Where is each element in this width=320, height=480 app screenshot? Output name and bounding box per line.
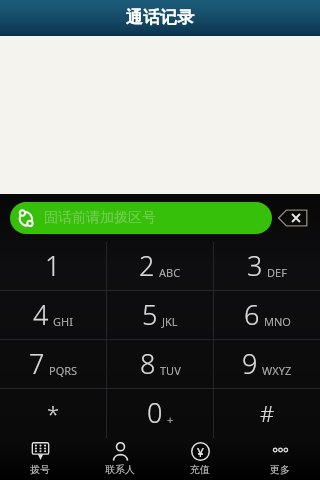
staticText: ¥ [197, 444, 204, 460]
button[interactable]: 8 [107, 340, 213, 389]
button[interactable]: 6 [214, 291, 320, 340]
staticText: 3 [247, 247, 263, 284]
staticText: 更多 [270, 463, 290, 476]
button[interactable]: 5 [107, 291, 213, 340]
button[interactable]: 2 [107, 242, 213, 291]
staticText: 拨号 [30, 463, 50, 476]
staticText: 联系人 [105, 463, 135, 476]
staticText: 7 [29, 345, 45, 382]
staticText: 5 [142, 296, 158, 333]
staticText: * [47, 398, 60, 428]
staticText: PQRS [49, 363, 78, 378]
button[interactable]: 联系人 [80, 438, 160, 480]
staticText: + [167, 412, 174, 427]
staticText: 固话前请加拨区号 [44, 209, 156, 227]
staticText: GHI [53, 314, 73, 329]
staticText: WXYZ [262, 363, 292, 378]
button[interactable]: 9 [214, 340, 320, 389]
button[interactable]: 3 [214, 242, 320, 291]
button[interactable]: 1 [0, 242, 106, 291]
staticText: 0 [147, 394, 163, 431]
button[interactable]: 0 [107, 389, 213, 438]
button[interactable]: 4 [0, 291, 106, 340]
staticText: ABC [159, 265, 181, 280]
staticText: 2 [139, 247, 155, 284]
staticText: MNO [264, 314, 291, 329]
button[interactable]: 拨号 [0, 438, 80, 480]
staticText: 6 [244, 296, 260, 333]
staticText: 通话记录 [126, 7, 194, 28]
staticText: 8 [140, 345, 156, 382]
staticText: 4 [33, 296, 49, 333]
button[interactable]: * [0, 389, 106, 438]
staticText: # [260, 398, 275, 428]
button[interactable]: Backspace [272, 198, 314, 238]
staticText: JKL [162, 314, 178, 329]
staticText: 9 [242, 345, 258, 382]
staticText: 充值 [190, 463, 210, 476]
staticText: DEF [267, 265, 287, 280]
button[interactable]: 更多 [240, 438, 320, 480]
staticText: 1 [45, 247, 61, 284]
button[interactable]: ¥ [160, 438, 240, 480]
staticText: TUV [160, 363, 181, 378]
button[interactable]: # [214, 389, 320, 438]
button[interactable]: 固话前请加拨区号 [10, 202, 272, 234]
button[interactable]: 7 [0, 340, 106, 389]
